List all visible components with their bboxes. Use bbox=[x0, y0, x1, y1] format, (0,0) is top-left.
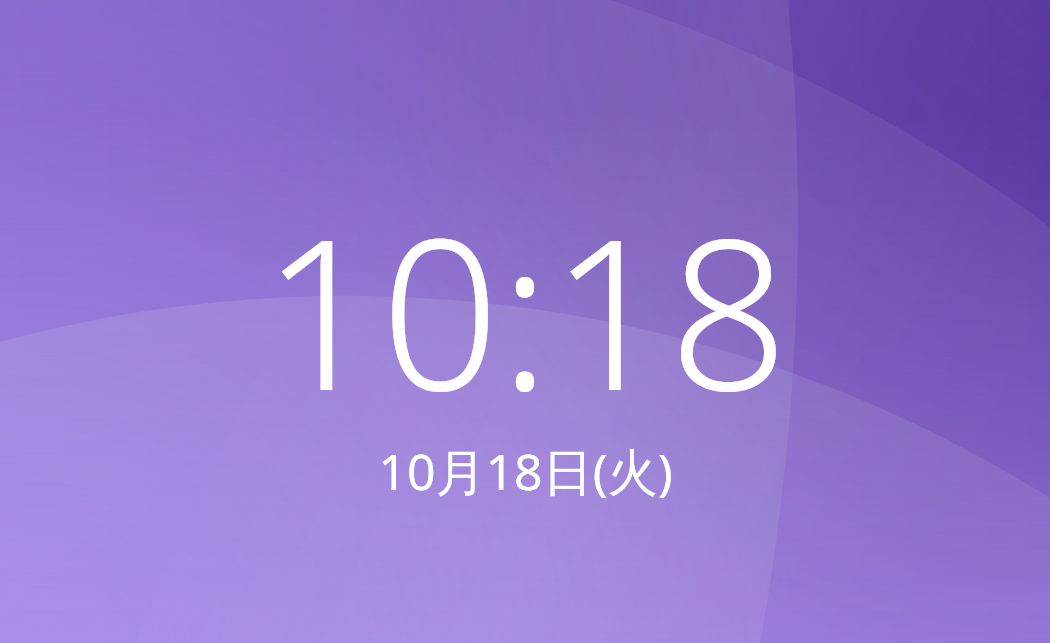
button[interactable]: Clock, 10:18, October 18 Tuesday bbox=[0, 0, 1050, 643]
staticText: 10月18日(火) bbox=[378, 437, 673, 505]
staticText: 10:18 bbox=[262, 168, 788, 451]
